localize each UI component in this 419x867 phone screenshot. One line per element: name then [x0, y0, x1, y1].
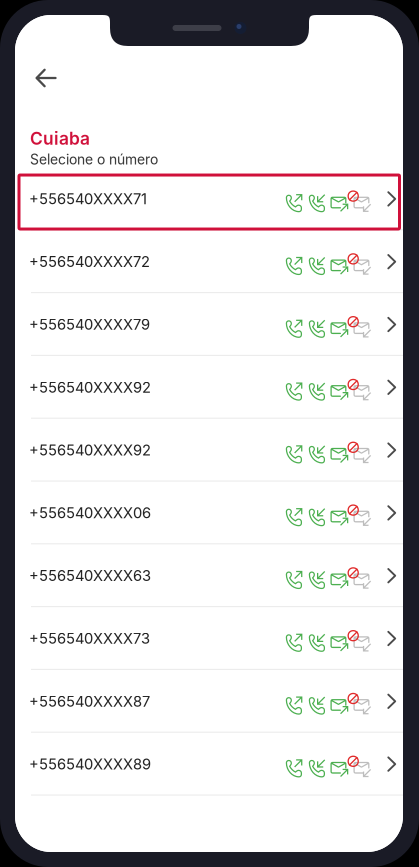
button[interactable]: +556540XXXX92 [15, 419, 403, 481]
button[interactable]: +556540XXXX71 [15, 167, 403, 230]
staticText: +556540XXXX87 [29, 692, 150, 710]
staticText: +556540XXXX92 [29, 441, 151, 459]
staticText: +556540XXXX92 [29, 378, 151, 396]
button[interactable]: +556540XXXX79 [15, 293, 403, 356]
staticText: Selecione o número [30, 151, 158, 168]
staticText: +556540XXXX63 [29, 567, 151, 584]
staticText: +556540XXXX73 [29, 630, 150, 647]
staticText: +556540XXXX06 [29, 504, 151, 522]
staticText: Cuiaba [30, 128, 90, 149]
button[interactable]: +556540XXXX72 [15, 230, 403, 293]
staticText: +556540XXXX89 [29, 755, 151, 773]
button[interactable]: +556540XXXX63 [15, 544, 403, 607]
staticText: +556540XXXX79 [29, 316, 150, 333]
button[interactable]: +556540XXXX73 [15, 607, 403, 670]
staticText: +556540XXXX72 [29, 253, 150, 270]
button[interactable]: +556540XXXX89 [15, 733, 403, 795]
button[interactable]: +556540XXXX92 [15, 356, 403, 419]
button[interactable]: +556540XXXX06 [15, 481, 403, 544]
button[interactable]: Back [24, 56, 68, 100]
staticText: +556540XXXX71 [29, 190, 147, 208]
button[interactable]: +556540XXXX87 [15, 670, 403, 733]
